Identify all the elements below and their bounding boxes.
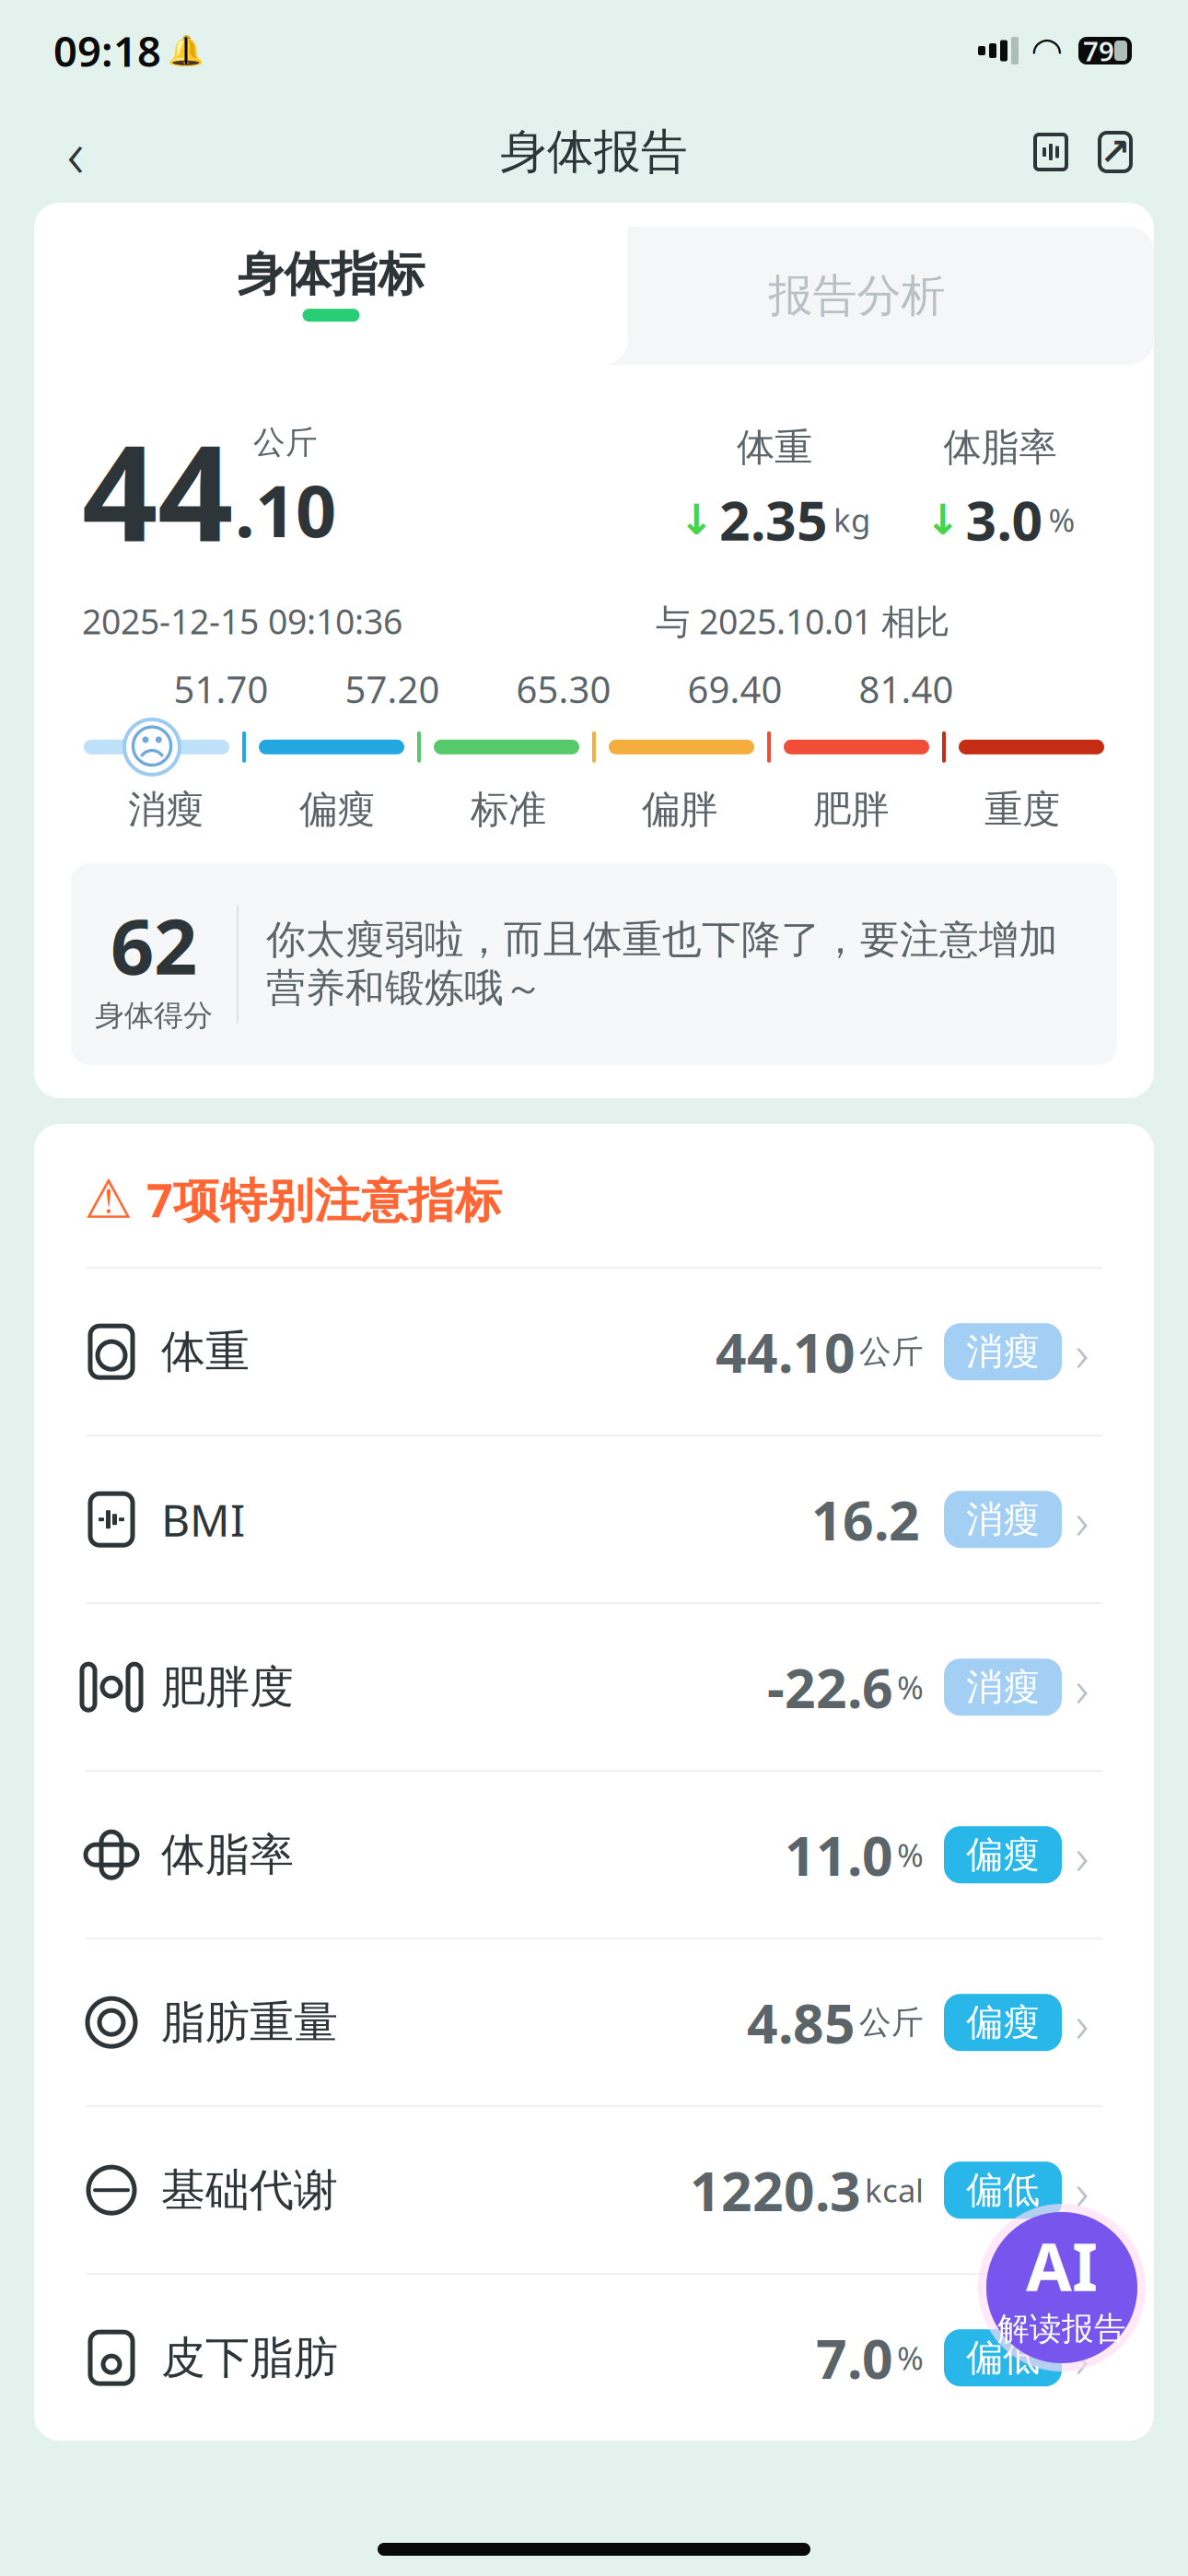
staticText: 偏低 [966,2167,1040,2213]
staticText: 基础代谢 [161,2163,338,2217]
staticText: ⚠ [84,1168,133,1230]
staticText: 脂肪重量 [161,1995,338,2050]
staticText: › [1075,1821,1089,1889]
staticText: 4.85 [747,1987,856,2058]
button[interactable]: 肥胖度 [34,1604,1154,1770]
staticText: 体脂率 [161,1828,294,1882]
staticText: 11.0 [785,1819,893,1891]
button[interactable]: Back [41,117,111,187]
staticText: .10 [235,462,336,557]
staticText: 体重 [737,424,812,471]
staticText: 身体指标 [237,246,425,303]
staticText: BMI [161,1490,245,1549]
staticText: 肥胖 [813,786,889,833]
button[interactable]: 体脂率 [34,1772,1154,1938]
staticText: › [1075,1317,1089,1386]
button[interactable]: 基础代谢 [34,2107,1154,2273]
staticText: ‹ [67,108,84,196]
staticText: 体重 [161,1325,250,1379]
staticText: 2025-12-15 09:10:36 [82,598,402,644]
staticText: › [1075,1653,1089,1721]
staticText: 肥胖度 [161,1660,294,1714]
staticText: › [1075,1988,1089,2057]
button[interactable]: 身体指标 [34,203,628,365]
staticText: 51.70 [174,664,268,713]
staticText: ↗ [1100,131,1131,173]
staticText: 7.0 [816,2322,893,2394]
staticText: ☹ [128,720,176,773]
staticText: 你太瘦弱啦，而且体重也下降了，要注意增加营养和锻炼哦～ [266,916,1058,1012]
staticText: 解读报告 [997,2309,1126,2349]
staticText: 消瘦 [966,1329,1040,1374]
button[interactable]: BMI [34,1437,1154,1602]
button[interactable]: 脂肪重量 [34,1940,1154,2105]
staticText: 消瘦 [128,786,204,833]
staticText: 消瘦 [966,1497,1040,1542]
staticText: 7项特别注意指标 [146,1168,502,1230]
staticText: ◠ [1033,30,1061,72]
button[interactable]: Trend chart [1019,117,1083,187]
button[interactable]: Share [1083,117,1147,187]
button[interactable]: AI 解读报告 [978,2204,1146,2371]
staticText: 81.40 [859,664,954,713]
staticText: ↓ [679,496,714,543]
staticText: › [1075,2156,1089,2224]
staticText: 62 [111,894,197,996]
staticText: % [897,1666,924,1708]
staticText: 09:18 [53,23,161,78]
staticText: AI [1026,2221,1098,2309]
staticText: › [1075,2324,1089,2392]
staticText: 消瘦 [966,1664,1040,1710]
staticText: 身体得分 [95,997,213,1034]
staticText: ↓ [925,496,960,543]
button[interactable]: 体重 [34,1269,1154,1435]
staticText: 与 2025.10.01 相比 [656,598,949,644]
staticText: 公斤 [253,423,318,462]
staticText: 44.10 [716,1316,856,1388]
staticText: 身体报告 [500,123,688,181]
staticText: 公斤 [859,2003,924,2042]
button[interactable]: 报告分析 [560,227,1154,365]
staticText: 报告分析 [769,269,945,323]
button[interactable]: 皮下脂肪 [34,2275,1154,2441]
staticText: 🔔 [168,34,204,68]
staticText: 57.20 [345,664,440,713]
staticText: 偏瘦 [966,1832,1040,1877]
staticText: 65.30 [516,664,611,713]
staticText: 1220.3 [690,2154,861,2226]
staticText: 16.2 [811,1484,920,1555]
staticText: 偏低 [966,2335,1040,2380]
staticText: 体脂率 [943,424,1057,471]
staticText: 69.40 [687,664,782,713]
staticText: % [897,1834,924,1876]
staticText: % [897,2337,924,2379]
staticText: 重度 [984,786,1060,833]
staticText: kcal [865,2169,924,2211]
staticText: 标准 [471,786,546,833]
staticText: kg [833,498,870,541]
staticText: 2.35 [719,484,828,555]
staticText: 3.0 [966,484,1043,555]
staticText: 公斤 [859,1332,924,1371]
staticText: 偏瘦 [966,2000,1040,2045]
staticText: 79 [1083,33,1114,69]
staticText: 偏瘦 [299,786,375,833]
staticText: › [1075,1485,1089,1554]
staticText: 偏胖 [642,786,717,833]
staticText: 皮下脂肪 [161,2331,338,2385]
staticText: % [1048,498,1075,541]
staticText: -22.6 [767,1651,893,1723]
staticText: 44 [82,402,233,578]
